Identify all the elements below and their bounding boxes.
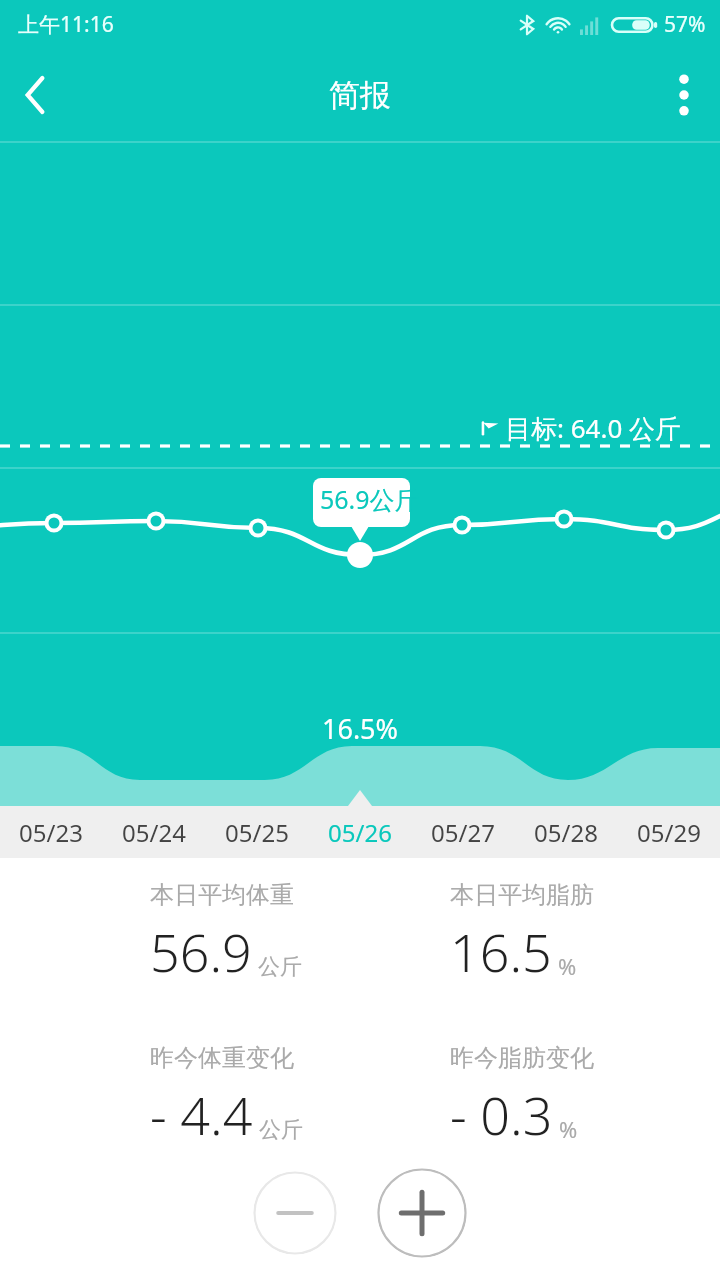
button[interactable]: 05/28	[514, 806, 617, 858]
staticText: 公斤	[259, 1116, 303, 1144]
button[interactable]: 05/24	[102, 806, 205, 858]
staticText: 16.5%	[322, 710, 399, 747]
staticText: 56.9	[150, 916, 252, 987]
staticText: 目标: 64.0 公斤	[505, 410, 682, 446]
staticText: 16.5	[450, 916, 552, 987]
staticText: 本日平均体重	[150, 880, 294, 910]
staticText: - 0.3	[450, 1079, 553, 1150]
staticText: 05/25	[225, 816, 289, 849]
button[interactable]: 05/23	[0, 806, 102, 858]
staticText: 昨今脂肪变化	[450, 1043, 594, 1073]
button[interactable]: 05/29	[617, 806, 720, 858]
staticText: 公斤	[258, 953, 302, 981]
staticText: 本日平均脂肪	[450, 880, 594, 910]
staticText: %	[559, 1114, 578, 1144]
button[interactable]: More options	[648, 59, 720, 131]
staticText: %	[558, 951, 577, 981]
staticText: 昨今体重变化	[150, 1043, 294, 1073]
button[interactable]: 05/27	[411, 806, 514, 858]
staticText: 05/28	[534, 816, 598, 849]
button[interactable]: 05/25	[205, 806, 308, 858]
staticText: - 4.4	[150, 1079, 253, 1150]
staticText: 05/29	[637, 816, 701, 849]
staticText: 05/26	[328, 816, 392, 849]
staticText: 05/27	[431, 816, 495, 849]
button[interactable]: Decrease	[253, 1171, 337, 1255]
staticText: 05/23	[19, 816, 83, 849]
staticText: 57%	[664, 10, 706, 39]
staticText: 05/24	[122, 816, 186, 849]
staticText: 简报	[329, 76, 391, 115]
button[interactable]: Back	[0, 59, 72, 131]
button[interactable]: Increase	[377, 1168, 467, 1258]
staticText: 上午11:16	[18, 10, 114, 39]
staticText: 56.9公斤	[320, 482, 420, 516]
button[interactable]: 05/26	[308, 806, 411, 858]
